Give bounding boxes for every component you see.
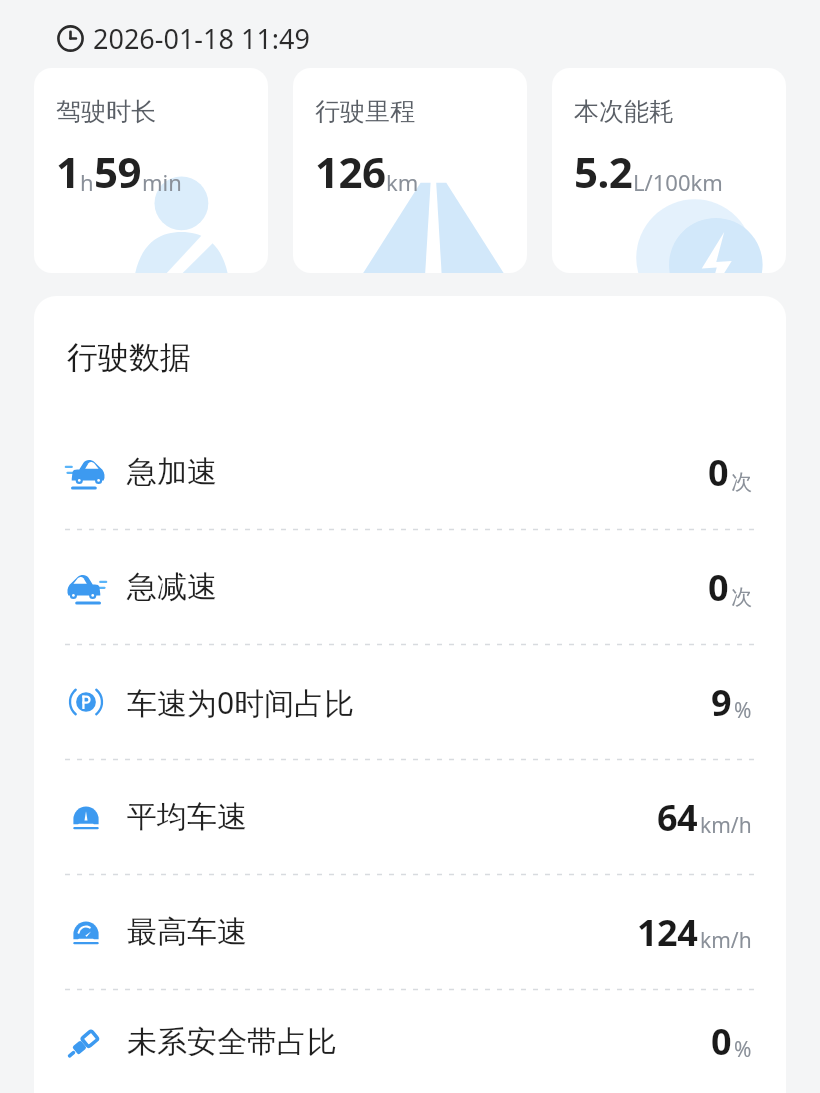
button[interactable]: 最高车速 [34, 875, 786, 989]
staticText: min [142, 167, 182, 197]
button[interactable]: 车速为0时间占比 [34, 645, 786, 759]
staticText: % [734, 1035, 752, 1064]
staticText: 未系安全带占比 [127, 1023, 337, 1061]
staticText: 59 [94, 143, 142, 200]
staticText: 0 [711, 1017, 732, 1066]
staticText: 5.2 [574, 143, 633, 200]
button[interactable]: 驾驶时长 [34, 68, 268, 273]
staticText: 64 [657, 793, 698, 842]
staticText: km/h [700, 926, 752, 955]
button[interactable]: 未系安全带占比 [34, 990, 786, 1093]
staticText: h [80, 167, 94, 197]
staticText: 车速为0时间占比 [127, 682, 355, 723]
staticText: 行驶数据 [67, 338, 191, 377]
button[interactable]: 行驶里程 [293, 68, 527, 273]
staticText: 急加速 [127, 453, 217, 491]
staticText: % [734, 696, 752, 725]
button[interactable]: 急加速 [34, 415, 786, 529]
staticText: km/h [700, 811, 752, 840]
button[interactable]: 平均车速 [34, 760, 786, 874]
staticText: 本次能耗 [574, 96, 674, 127]
staticText: 9 [711, 678, 732, 727]
staticText: 行驶里程 [315, 96, 415, 127]
staticText: 124 [637, 908, 698, 957]
staticText: km [386, 167, 419, 197]
staticText: 0 [708, 563, 729, 612]
staticText: 最高车速 [127, 913, 247, 951]
staticText: 1 [56, 143, 80, 200]
staticText: 2026-01-18 11:49 [93, 20, 310, 56]
staticText: 0 [708, 448, 729, 497]
button[interactable]: 急减速 [34, 530, 786, 644]
staticText: 次 [731, 469, 752, 495]
staticText: 急减速 [127, 568, 217, 606]
staticText: 126 [315, 143, 386, 200]
button[interactable]: 本次能耗 [552, 68, 786, 273]
staticText: 次 [731, 584, 752, 610]
staticText: 驾驶时长 [56, 96, 156, 127]
other: Time [57, 25, 84, 52]
staticText: 平均车速 [127, 798, 247, 836]
staticText: L/100km [633, 167, 723, 197]
